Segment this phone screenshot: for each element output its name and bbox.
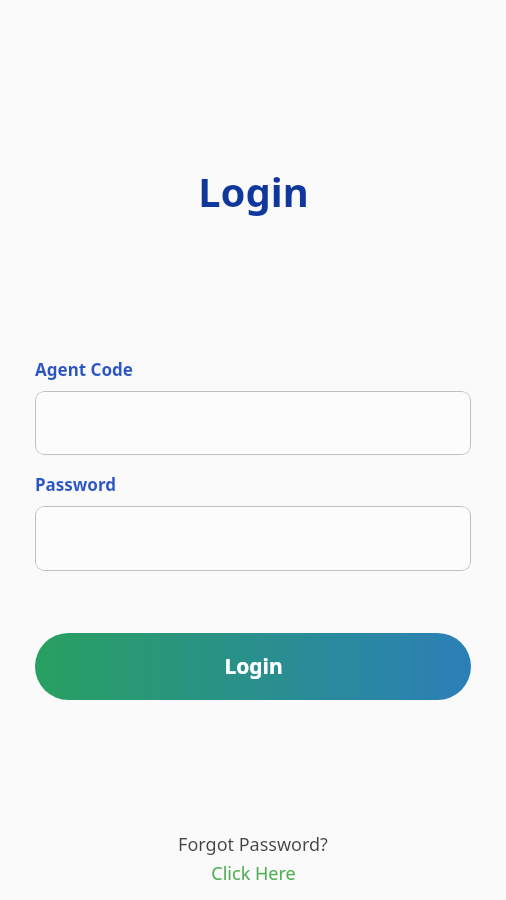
button[interactable] [35,506,471,571]
button[interactable]: Login [35,633,471,700]
staticText: Click Here [211,861,296,886]
button[interactable]: Forgot Password? [0,832,506,900]
staticText: Login [224,652,283,681]
button[interactable] [35,391,471,455]
staticText: Agent Code [35,358,133,381]
staticText: Password [35,473,116,496]
staticText: Login [198,164,309,218]
staticText: Forgot Password? [178,832,328,857]
